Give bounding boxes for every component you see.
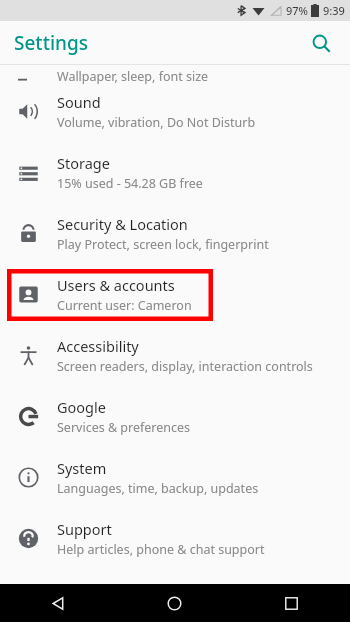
staticText: Help articles, phone & chat support xyxy=(57,541,265,558)
button[interactable]: Search settings xyxy=(304,26,338,60)
staticText: 15% used - 54.28 GB free xyxy=(57,175,203,192)
staticText: Storage xyxy=(57,153,110,173)
staticText: Users & accounts xyxy=(57,275,175,295)
staticText: Security & Location xyxy=(57,214,188,234)
staticText: Services & preferences xyxy=(57,419,191,436)
button[interactable]: System xyxy=(0,447,350,508)
staticText: Google xyxy=(57,397,106,417)
staticText: Screen readers, display, interaction con… xyxy=(57,358,313,375)
staticText: 97% xyxy=(286,3,308,18)
staticText: Accessibility xyxy=(57,336,139,356)
button[interactable]: Accessibility xyxy=(0,325,350,386)
button[interactable]: Home xyxy=(116,584,233,622)
button[interactable]: Google xyxy=(0,386,350,447)
staticText: Sound xyxy=(57,92,101,112)
button[interactable]: Sound xyxy=(0,81,350,142)
button[interactable]: Users & accounts xyxy=(0,264,350,325)
staticText: Support xyxy=(57,519,112,539)
button[interactable]: Support xyxy=(0,508,350,569)
staticText: 9:39 xyxy=(323,3,345,18)
staticText: Settings xyxy=(14,30,88,56)
staticText: Languages, time, backup, updates xyxy=(57,480,259,497)
staticText: Wallpaper, sleep, font size xyxy=(57,68,209,84)
staticText: Play Protect, screen lock, fingerprint xyxy=(57,236,269,253)
button[interactable]: Wallpaper, sleep, font size xyxy=(0,65,350,81)
button[interactable]: Security & Location xyxy=(0,203,350,264)
button[interactable]: Back xyxy=(0,584,116,622)
staticText: Volume, vibration, Do Not Disturb xyxy=(57,114,256,131)
staticText: System xyxy=(57,458,107,478)
button[interactable]: Storage xyxy=(0,142,350,203)
staticText: Current user: Cameron xyxy=(57,297,192,314)
button[interactable]: Recent apps xyxy=(233,584,350,622)
